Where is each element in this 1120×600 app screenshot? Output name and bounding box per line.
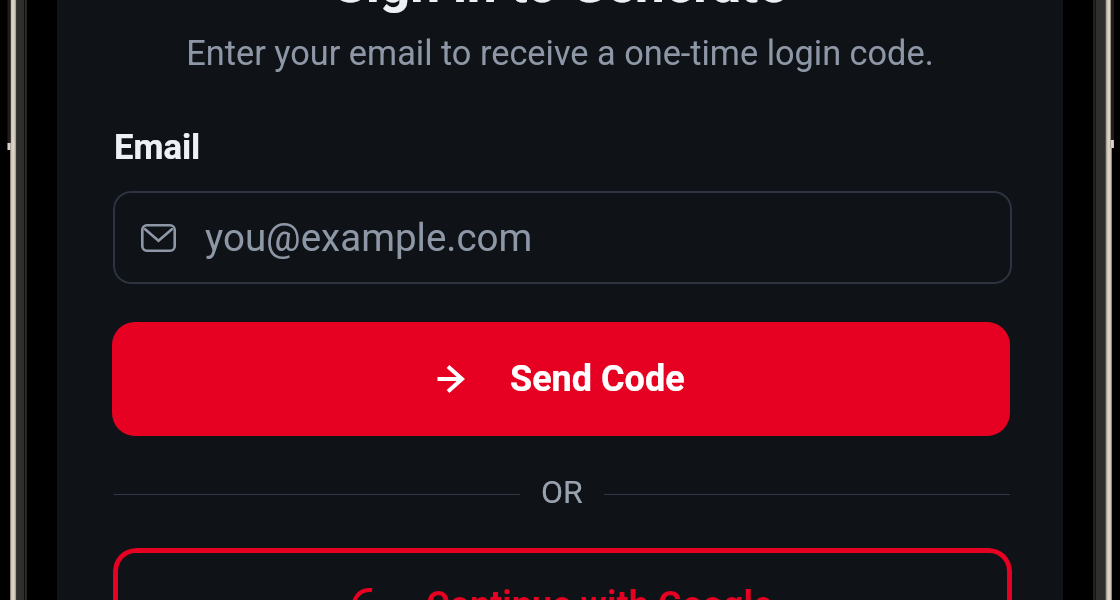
staticText: Continue with Google [426,584,773,600]
button[interactable]: Continue with Google [113,548,1012,600]
staticText: Email [114,127,201,168]
staticText: Sign in to Generate [57,0,1063,15]
other: Email [141,224,176,252]
staticText: OR [541,473,583,511]
staticText: Send Code [510,358,685,400]
staticText: Enter your email to receive a one-time l… [57,33,1063,73]
button[interactable]: Send Code [112,322,1010,436]
button[interactable]: Email [113,191,1012,284]
staticText: you@example.com [205,215,533,260]
